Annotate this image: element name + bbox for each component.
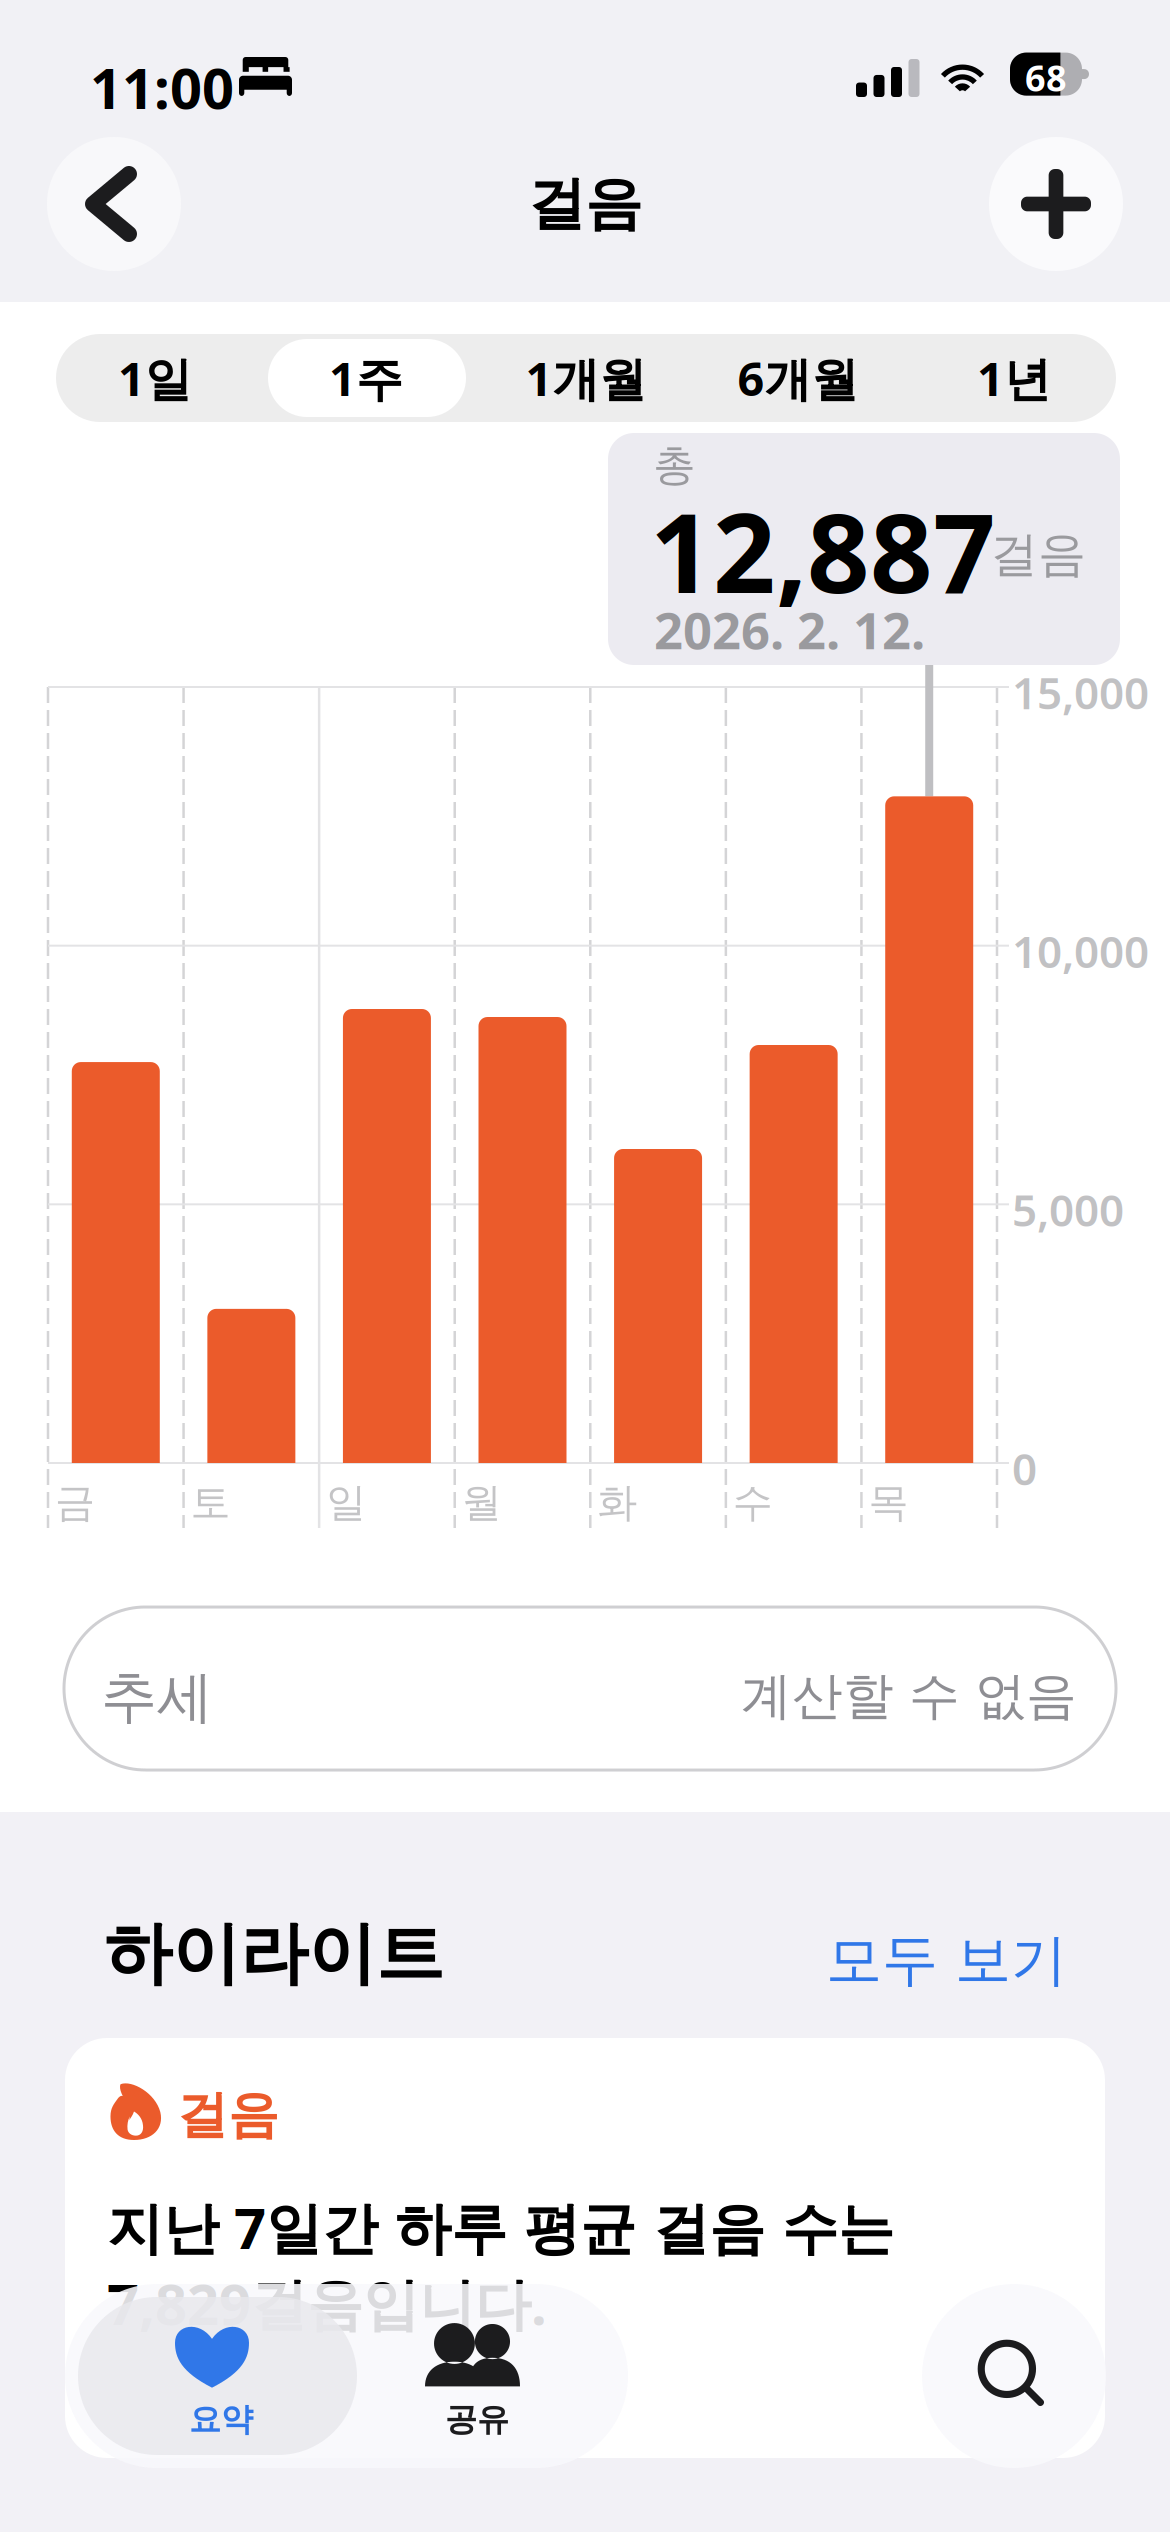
- staticText: 일: [326, 1478, 366, 1527]
- staticText: 목: [868, 1478, 908, 1527]
- button[interactable]: 검색: [922, 2284, 1106, 2468]
- staticText: 15,000: [1012, 663, 1149, 721]
- staticText: 금: [55, 1478, 95, 1527]
- staticText: 모두 보기: [826, 1926, 1067, 1995]
- staticText: 68: [1025, 54, 1067, 101]
- staticText: 1일: [118, 347, 192, 409]
- staticText: 2026. 2. 12.: [654, 596, 925, 663]
- staticText: 요약: [189, 2400, 253, 2439]
- staticText: 계산할 수 없음: [741, 1665, 1077, 1727]
- button[interactable]: 1년: [914, 334, 1114, 422]
- staticText: 수: [733, 1478, 773, 1527]
- staticText: 걸음: [177, 2084, 279, 2146]
- staticText: 1개월: [525, 347, 646, 409]
- button[interactable]: 6개월: [698, 334, 898, 422]
- staticText: 1년: [977, 347, 1051, 409]
- button[interactable]: 1개월: [486, 334, 686, 422]
- staticText: 걸음: [990, 525, 1086, 584]
- staticText: 11:00: [90, 50, 234, 124]
- staticText: 12,887: [650, 478, 996, 623]
- staticText: 지난 7일간 하루 평균 걸음 수는: [107, 2190, 894, 2264]
- staticText: 1주: [329, 347, 403, 409]
- button[interactable]: 공유: [357, 2284, 628, 2468]
- staticText: 하이라이트: [104, 1912, 444, 1995]
- button[interactable]: 추가: [989, 137, 1123, 271]
- staticText: 0: [1012, 1439, 1037, 1497]
- button[interactable]: 요약: [65, 2284, 357, 2468]
- button[interactable]: 추세: [64, 1607, 1116, 1770]
- staticText: 화: [597, 1478, 637, 1527]
- button[interactable]: 1일: [55, 334, 255, 422]
- button[interactable]: 뒤로: [47, 137, 181, 271]
- button[interactable]: 1주: [266, 334, 466, 422]
- staticText: 토: [191, 1478, 231, 1527]
- staticText: 총: [653, 439, 696, 491]
- staticText: 5,000: [1012, 1180, 1124, 1239]
- staticText: 걸음: [528, 169, 642, 239]
- staticText: 6개월: [737, 347, 858, 409]
- button[interactable]: 모두 보기: [826, 1926, 1067, 1995]
- staticText: 10,000: [1012, 922, 1149, 980]
- button[interactable]: 걸음: [65, 2038, 1105, 2458]
- staticText: 추세: [101, 1663, 213, 1732]
- staticText: 공유: [445, 2400, 509, 2439]
- staticText: 7,829걸음입니다.: [107, 2266, 547, 2340]
- staticText: 월: [462, 1478, 502, 1527]
